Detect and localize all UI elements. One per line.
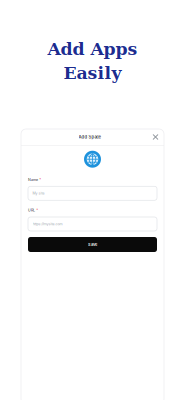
- staticText: Add Apps: [47, 39, 137, 59]
- staticText: Easily: [63, 63, 121, 83]
- staticText: My site: [32, 191, 44, 195]
- staticText: *: [39, 177, 41, 182]
- staticText: URL: [28, 208, 35, 212]
- button[interactable]: Close: [150, 129, 161, 145]
- staticText: https://mysite.com: [32, 222, 62, 226]
- button[interactable]: Save: [28, 237, 157, 252]
- staticText: Save: [88, 242, 97, 247]
- staticText: *: [36, 208, 38, 212]
- staticText: Add Space: [78, 134, 101, 140]
- staticText: Name: [28, 177, 38, 182]
